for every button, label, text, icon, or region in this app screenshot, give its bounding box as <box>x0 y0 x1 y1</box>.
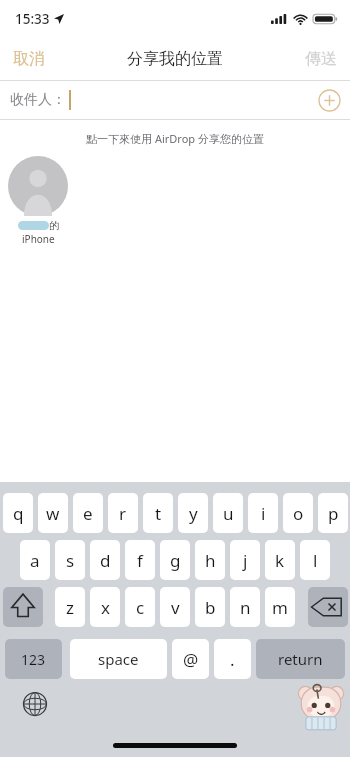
button[interactable]: n <box>230 587 260 627</box>
button[interactable]: 傳送 <box>292 42 350 76</box>
staticText: a <box>30 549 40 572</box>
staticText: x <box>101 596 110 619</box>
button[interactable]: 取消 <box>0 42 58 76</box>
button[interactable]: v <box>160 587 190 627</box>
staticText: space <box>98 649 139 669</box>
button[interactable]: Backspace <box>308 587 348 627</box>
staticText: v <box>171 596 180 619</box>
staticText: 的 <box>49 219 59 232</box>
button[interactable]: @ <box>172 639 209 679</box>
button[interactable]: w <box>38 493 68 533</box>
button[interactable]: c <box>125 587 155 627</box>
staticText: n <box>240 596 251 619</box>
staticText: p <box>328 502 339 525</box>
button[interactable]: t <box>143 493 173 533</box>
button[interactable]: 123 <box>5 639 62 679</box>
button[interactable]: g <box>160 540 190 580</box>
staticText: 收件人： <box>10 91 66 109</box>
button[interactable]: i <box>248 493 278 533</box>
button[interactable]: q <box>3 493 33 533</box>
staticText: e <box>83 502 93 525</box>
button[interactable]: r <box>108 493 138 533</box>
staticText: 取消 <box>13 49 45 69</box>
button[interactable]: b <box>195 587 225 627</box>
staticText: c <box>136 596 145 619</box>
button[interactable]: l <box>300 540 330 580</box>
staticText: k <box>275 549 285 572</box>
button[interactable]: Change keyboard language <box>22 691 48 717</box>
button[interactable]: o <box>283 493 313 533</box>
button[interactable]: y <box>178 493 208 533</box>
staticText: i <box>261 502 266 525</box>
staticText: 分享我的位置 <box>127 49 223 69</box>
staticText: g <box>170 549 181 572</box>
button[interactable]: u <box>213 493 243 533</box>
staticText: q <box>13 502 24 525</box>
staticText: m <box>272 596 288 619</box>
button[interactable]: h <box>195 540 225 580</box>
staticText: b <box>205 596 216 619</box>
staticText: 傳送 <box>305 49 337 69</box>
staticText: 點一下來使用 AirDrop 分享您的位置 <box>0 131 350 146</box>
button[interactable]: a <box>20 540 50 580</box>
staticText: 123 <box>21 650 46 669</box>
staticText: r <box>119 502 127 525</box>
button[interactable]: space <box>70 639 167 679</box>
staticText: j <box>243 549 248 572</box>
staticText: z <box>66 596 74 619</box>
button[interactable]: e <box>73 493 103 533</box>
staticText: w <box>46 502 60 525</box>
staticText: f <box>137 549 143 572</box>
staticText: iPhone <box>22 232 55 246</box>
staticText: u <box>223 502 234 525</box>
button[interactable]: d <box>90 540 120 580</box>
staticText: 15:33 <box>15 10 50 28</box>
button[interactable]: 的 <box>0 156 76 246</box>
staticText: o <box>293 502 304 525</box>
staticText: h <box>205 549 216 572</box>
staticText: d <box>100 549 111 572</box>
staticText: @ <box>183 648 199 671</box>
button[interactable]: s <box>55 540 85 580</box>
button[interactable]: j <box>230 540 260 580</box>
button[interactable]: . <box>214 639 251 679</box>
button[interactable]: z <box>55 587 85 627</box>
button[interactable]: Add recipient <box>318 89 341 112</box>
staticText: s <box>66 549 75 572</box>
staticText: t <box>155 502 162 525</box>
staticText: y <box>189 502 198 525</box>
button[interactable]: x <box>90 587 120 627</box>
staticText: return <box>278 649 323 669</box>
button[interactable]: p <box>318 493 348 533</box>
button[interactable]: return <box>256 639 345 679</box>
button[interactable]: Shift <box>3 587 43 627</box>
staticText: l <box>313 549 318 572</box>
button[interactable]: k <box>265 540 295 580</box>
button[interactable]: m <box>265 587 295 627</box>
button[interactable]: f <box>125 540 155 580</box>
staticText: . <box>230 648 235 671</box>
